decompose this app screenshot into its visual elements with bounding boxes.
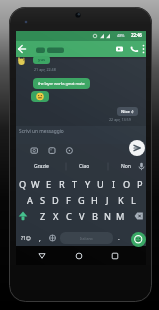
button[interactable]: Nice :) [117,107,138,116]
staticText: I [112,178,116,191]
button[interactable]: E [42,176,55,192]
staticText: 22 apr, 13:59 [109,117,131,122]
button[interactable]: yus [33,56,50,64]
staticText: Scrivi un messaggio [19,128,64,135]
button[interactable] [131,232,146,247]
staticText: U [97,178,104,191]
staticText: Y [85,178,91,191]
button[interactable]: P [133,176,146,192]
staticText: Non [121,163,131,170]
button[interactable]: X [49,208,62,224]
button[interactable]: O [120,176,133,192]
staticText: M [116,210,125,223]
staticText: D [52,194,59,207]
staticText: Grazie [34,163,49,170]
button[interactable]: Q [16,176,29,192]
staticText: H [91,194,98,207]
button[interactable]: T [68,176,81,192]
staticText: J [106,194,109,207]
button[interactable]: Italiano [60,232,113,244]
staticText: C [66,210,72,223]
button[interactable]: A [23,192,36,208]
button[interactable]: W [29,176,42,192]
staticText: Nice :) [121,109,134,114]
staticText: L [131,194,136,207]
staticText: K [118,194,124,207]
button[interactable] [129,140,145,156]
staticText: Ciao [79,163,90,170]
button[interactable] [72,249,86,263]
staticText: G [78,194,85,207]
staticText: W [31,178,40,191]
button[interactable] [46,229,59,247]
staticText: P [137,178,143,191]
staticText: A [27,194,33,207]
staticText: 21 apr, 22:48 [34,67,56,72]
button[interactable] [108,249,122,263]
button[interactable]: J [101,192,114,208]
staticText: Z [40,210,46,223]
button[interactable]: F [62,192,75,208]
button[interactable]: G [75,192,88,208]
staticText: the layer works great mate [38,81,85,86]
button[interactable]: I [107,176,120,192]
button[interactable] [131,208,145,224]
button[interactable]: Ciao [73,160,95,173]
button[interactable]: B [88,208,101,224]
staticText: E [46,178,52,191]
staticText: V [79,210,85,223]
button[interactable]: V [75,208,88,224]
button[interactable]: Non [115,160,137,173]
button[interactable] [31,91,49,102]
staticText: yus [38,57,46,63]
staticText: X [53,210,59,223]
button[interactable]: M [114,208,127,224]
button[interactable]: C [62,208,75,224]
button[interactable]: Y [81,176,94,192]
button[interactable]: . [118,233,120,242]
staticText: O [123,178,131,191]
button[interactable]: ?1☺ [17,230,34,246]
staticText: N [104,210,111,223]
button[interactable]: D [49,192,62,208]
staticText: B [92,210,98,223]
button[interactable] [129,44,140,54]
button[interactable]: , [39,234,41,243]
button[interactable]: N [101,208,114,224]
button[interactable]: R [55,176,68,192]
button[interactable] [141,43,146,55]
button[interactable]: Z [36,208,49,224]
button[interactable]: K [114,192,127,208]
staticText: 48% [117,33,125,38]
button[interactable]: Grazie [24,160,58,173]
button[interactable]: U [94,176,107,192]
staticText: T [72,178,78,191]
button[interactable]: S [36,192,49,208]
staticText: 22:46 [131,32,142,38]
staticText: F [66,194,71,207]
button[interactable] [17,208,31,224]
staticText: S [40,194,46,207]
button[interactable] [16,41,29,57]
button[interactable]: H [88,192,101,208]
button[interactable] [114,44,125,54]
button[interactable] [35,249,49,263]
staticText: Italiano [80,236,93,241]
staticText: Q [19,178,27,191]
button[interactable]: the layer works great mate [33,78,90,89]
staticText: R [59,178,65,191]
staticText: ?1☺ [21,235,31,242]
button[interactable]: L [127,192,140,208]
button[interactable] [16,126,146,144]
